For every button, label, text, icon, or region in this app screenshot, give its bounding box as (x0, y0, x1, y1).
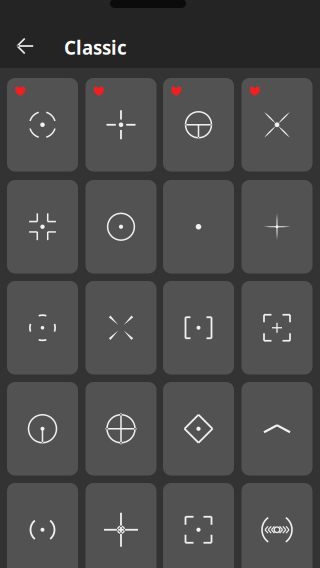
button[interactable]: Reticle 15 (163, 382, 234, 475)
button[interactable]: Reticle 4 (241, 78, 312, 171)
button[interactable]: Reticle 6 (85, 180, 156, 273)
staticText: Classic (64, 35, 127, 60)
button[interactable]: Back (9, 30, 41, 62)
button[interactable]: Reticle 13 (7, 382, 78, 475)
button[interactable]: Reticle 2 (85, 78, 156, 171)
button[interactable]: Reticle 19 (163, 483, 234, 568)
button[interactable]: Reticle 14 (85, 382, 156, 475)
button[interactable]: Reticle 3 (163, 78, 234, 171)
button[interactable]: Reticle 11 (163, 281, 234, 374)
button[interactable]: Reticle 8 (241, 180, 312, 273)
button[interactable]: Reticle 18 (85, 483, 156, 568)
button[interactable]: Reticle 20 (241, 483, 312, 568)
button[interactable]: Reticle 7 (163, 180, 234, 273)
button[interactable]: Reticle 10 (85, 281, 156, 374)
button[interactable]: Reticle 1 (7, 78, 78, 171)
button[interactable]: Reticle 16 (241, 382, 312, 475)
button[interactable]: Reticle 17 (7, 483, 78, 568)
button[interactable]: Reticle 5 (7, 180, 78, 273)
button[interactable]: Reticle 9 (7, 281, 78, 374)
button[interactable]: Reticle 12 (241, 281, 312, 374)
